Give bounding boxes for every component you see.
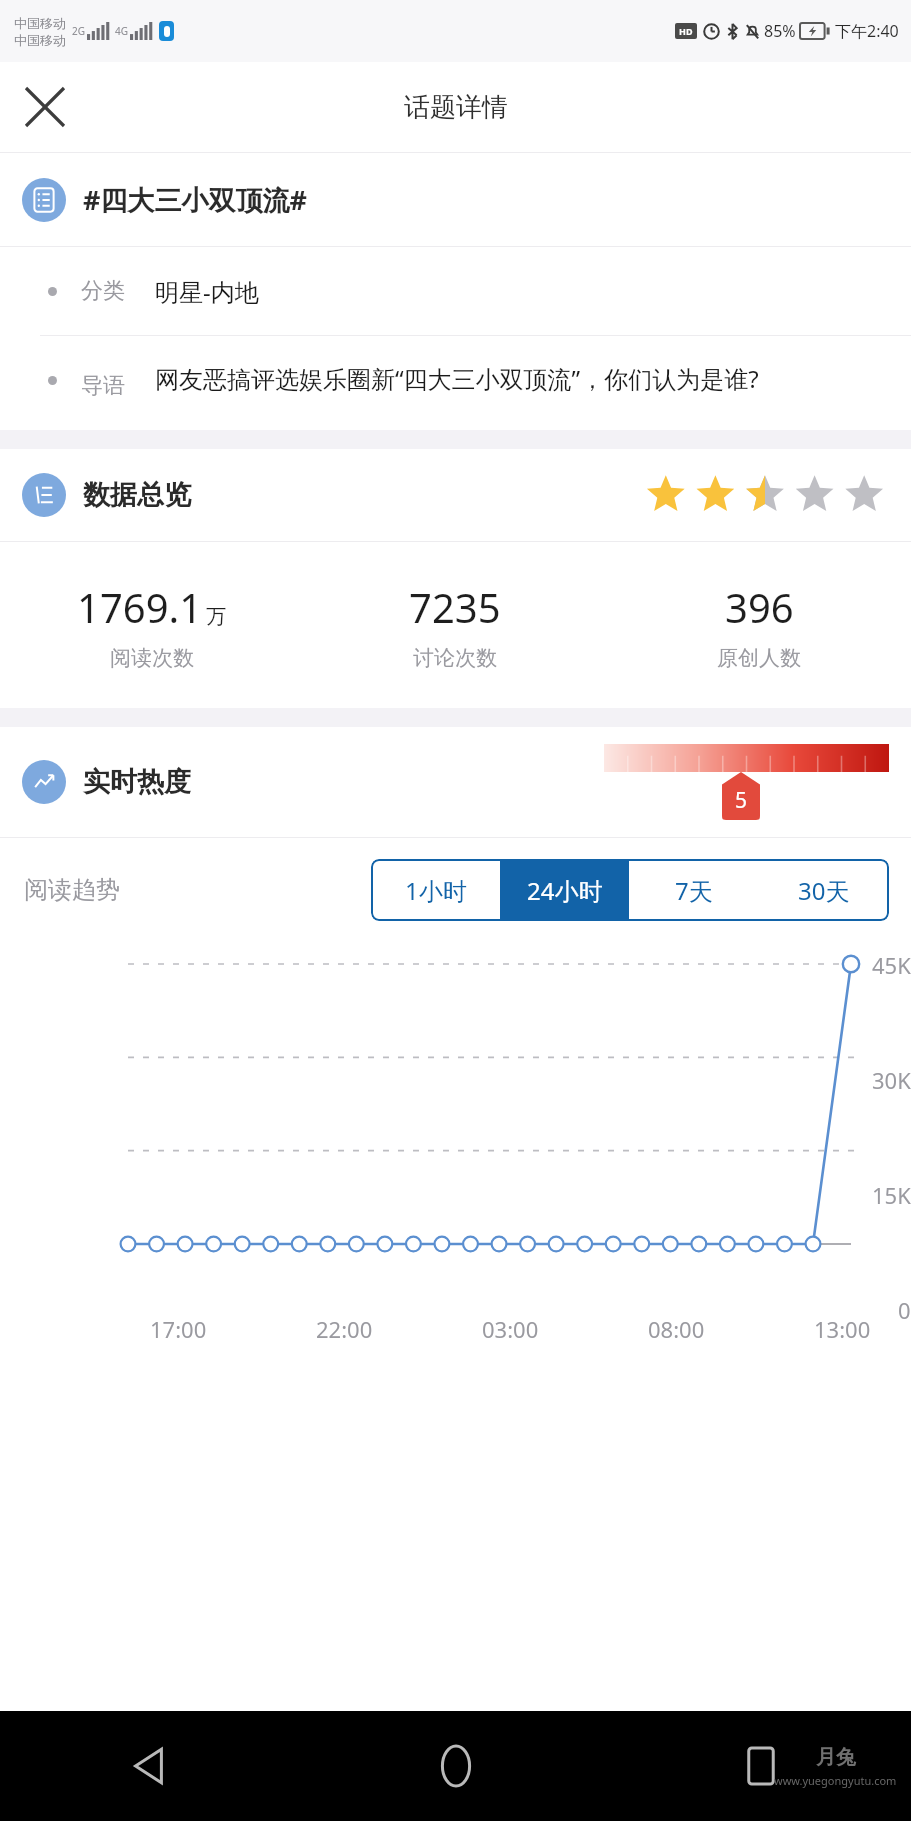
button[interactable]: Recents: [721, 1726, 801, 1806]
staticText: 导语: [81, 372, 125, 400]
staticText: 85%: [764, 20, 796, 42]
staticText: 396: [725, 580, 794, 634]
staticText: 15K: [872, 1180, 911, 1210]
staticText: 网友恶搞评选娱乐圈新“四大三小双顶流”，你们认为是谁?: [155, 362, 759, 395]
button[interactable]: 24小时: [500, 859, 629, 921]
button[interactable]: Back: [110, 1726, 190, 1806]
staticText: 分类: [81, 277, 125, 305]
button[interactable]: 7天: [629, 859, 759, 921]
staticText: 中国移动: [14, 15, 66, 31]
button[interactable]: #四大三小双顶流#: [0, 153, 911, 246]
staticText: 原创人数: [717, 645, 801, 671]
button[interactable]: 396: [607, 580, 911, 671]
staticText: www.yuegongyutu.com: [774, 1773, 897, 1788]
staticText: 实时热度: [83, 765, 191, 799]
staticText: 讨论次数: [413, 645, 497, 671]
staticText: 45K: [872, 950, 911, 980]
staticText: 7235: [409, 580, 501, 634]
staticText: 17:00: [150, 1314, 207, 1344]
staticText: 月兔: [816, 1745, 856, 1770]
staticText: #四大三小双顶流#: [83, 181, 307, 218]
staticText: 数据总览: [83, 478, 191, 512]
button[interactable]: 数据总览: [0, 449, 911, 541]
staticText: 阅读趋势: [24, 875, 120, 905]
staticText: 中国移动: [14, 32, 66, 48]
button[interactable]: 30天: [759, 859, 889, 921]
staticText: 30天: [798, 874, 850, 907]
button[interactable]: Close: [14, 76, 76, 138]
staticText: 7天: [675, 874, 713, 907]
button[interactable]: 1769.1: [0, 580, 303, 671]
staticText: 1769.1: [77, 580, 203, 634]
staticText: HD: [679, 25, 693, 37]
staticText: 阅读次数: [110, 645, 194, 671]
staticText: 1小时: [405, 874, 467, 907]
staticText: 08:00: [648, 1314, 705, 1344]
staticText: 03:00: [482, 1314, 539, 1344]
button[interactable]: 1小时: [371, 859, 500, 921]
button[interactable]: 7235: [303, 580, 607, 671]
staticText: 13:00: [814, 1314, 871, 1344]
staticText: 万: [206, 604, 226, 629]
staticText: 明星-内地: [155, 275, 259, 308]
staticText: 话题详情: [404, 91, 508, 124]
staticText: 0: [898, 1295, 911, 1325]
button[interactable]: 实时热度: [0, 727, 911, 837]
staticText: 22:00: [316, 1314, 373, 1344]
staticText: 下午2:40: [835, 20, 899, 42]
staticText: 30K: [872, 1065, 911, 1095]
staticText: 24小时: [527, 874, 603, 907]
staticText: 5: [735, 786, 748, 815]
button[interactable]: Home: [416, 1726, 496, 1806]
staticText: 2G: [72, 24, 85, 38]
staticText: 4G: [115, 24, 128, 38]
